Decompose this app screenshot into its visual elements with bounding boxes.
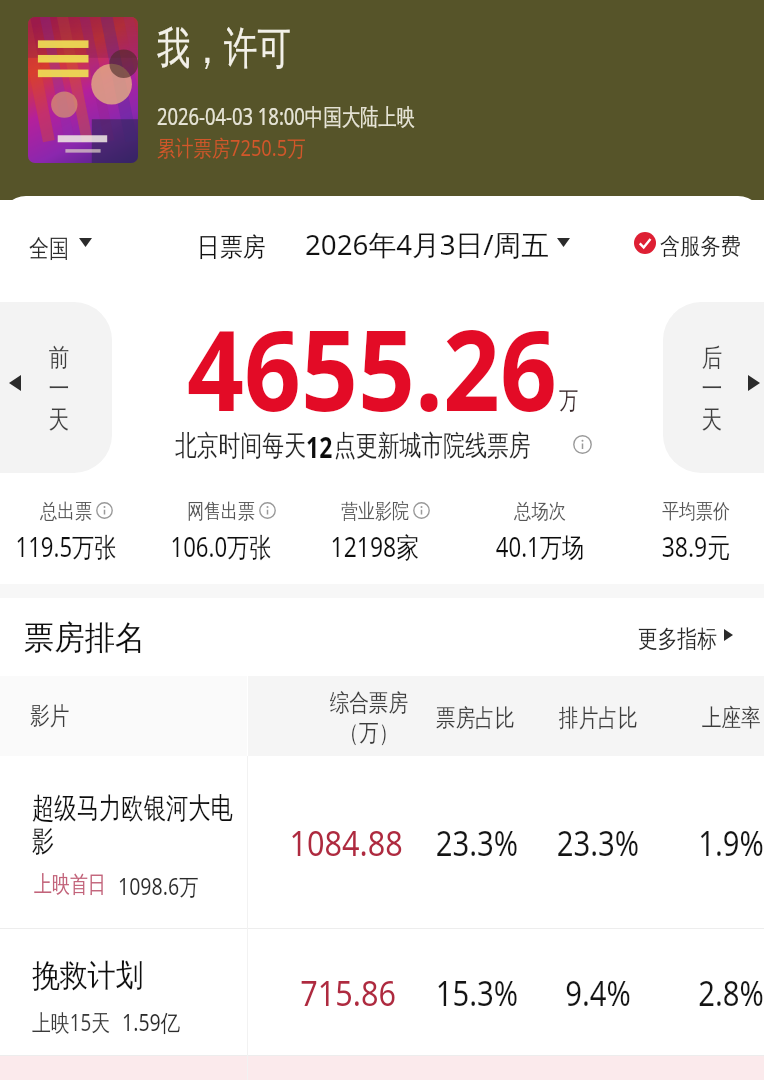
staticText: 2.8%	[651, 970, 764, 1016]
staticText: 全国	[29, 233, 69, 264]
staticText: 总场次	[460, 499, 620, 524]
staticText: 超级马力欧银河大电影	[32, 790, 237, 859]
button[interactable]: 影片海报	[28, 17, 138, 163]
staticText: 1098.6万	[118, 870, 199, 901]
staticText: 点更新城市院线票房	[334, 428, 531, 463]
staticText: 日票房	[197, 231, 266, 264]
staticText: 12	[306, 428, 333, 466]
staticText: 更多指标	[638, 624, 717, 654]
staticText: 我，许可	[157, 21, 291, 76]
button[interactable]	[628, 608, 746, 662]
staticText: 营业影院	[295, 499, 455, 524]
button[interactable]	[630, 222, 748, 274]
button[interactable]: 前一天	[0, 302, 112, 473]
staticText: 前 一 天	[46, 342, 72, 436]
staticText: 1.9%	[651, 820, 764, 866]
button[interactable]	[195, 222, 585, 274]
staticText: 2026-04-03 18:00中国大陆上映	[157, 100, 415, 131]
staticText: 119.5万张	[0, 528, 146, 565]
staticText: 106.0万张	[141, 528, 301, 565]
staticText: 总出票	[0, 499, 146, 524]
staticText: 1.59亿	[122, 1006, 181, 1037]
staticText: 综合票房 （万）	[318, 688, 420, 749]
staticText: 38.9元	[616, 528, 764, 565]
staticText: 含服务费	[660, 232, 741, 261]
staticText: 上映15天	[32, 1006, 111, 1037]
staticText: 票房排名	[24, 617, 145, 659]
staticText: 票房占比	[436, 703, 538, 733]
button[interactable]	[0, 929, 764, 1055]
staticText: 9.4%	[518, 970, 678, 1016]
staticText: 排片占比	[559, 703, 661, 733]
button[interactable]: 后一天	[663, 302, 764, 473]
staticText: 4655.26	[187, 291, 557, 444]
staticText: 23.3%	[518, 820, 678, 866]
staticText: 23.3%	[397, 820, 557, 866]
staticText: 40.1万场	[460, 528, 620, 565]
staticText: 12198家	[295, 528, 455, 565]
staticText: 挽救计划	[32, 956, 144, 995]
staticText: 2026年4月3日/周五	[305, 225, 549, 263]
staticText: 网售出票	[141, 499, 301, 524]
staticText: 上映首日	[34, 870, 106, 899]
staticText: 万	[559, 385, 578, 416]
staticText: 平均票价	[616, 499, 764, 524]
staticText: 累计票房7250.5万	[157, 132, 306, 162]
staticText: 后 一 天	[699, 342, 725, 436]
button[interactable]	[20, 222, 116, 274]
staticText: 715.86	[268, 970, 428, 1016]
staticText: 1084.88	[266, 820, 426, 866]
staticText: 上座率	[691, 703, 764, 733]
staticText: 北京时间每天	[175, 428, 306, 463]
staticText: 15.3%	[397, 970, 557, 1016]
staticText: 影片	[30, 701, 69, 731]
button[interactable]	[0, 757, 764, 928]
